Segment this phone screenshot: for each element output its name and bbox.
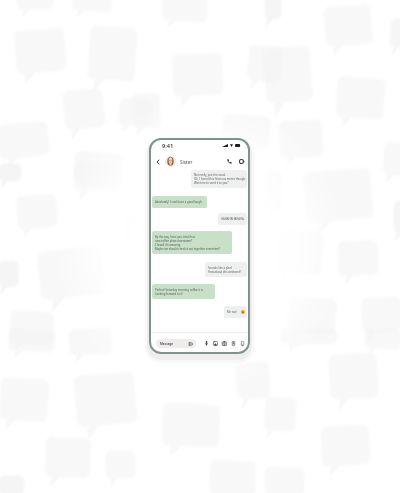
staticText: By the way, have you tried that new coff… (155, 235, 220, 251)
staticText: 9:41 (162, 142, 174, 150)
button[interactable]: Profile photo (165, 156, 176, 167)
button[interactable]: Me too! (224, 306, 247, 318)
button[interactable]: Video call (237, 157, 246, 166)
button[interactable]: Attach file (230, 340, 236, 347)
staticText: Me too! (227, 310, 237, 314)
button[interactable]: By the way, have you tried that new coff… (152, 231, 232, 254)
button[interactable]: Back (153, 157, 162, 166)
staticText: Absolutely! I could use a good laugh. (155, 200, 203, 204)
staticText: Message (160, 342, 174, 346)
button[interactable]: Not really, just the usual. Oh, I found … (191, 170, 247, 188)
staticText: Perfect! Saturday morning coffee it is. … (155, 288, 204, 296)
button[interactable]: Camera (221, 340, 227, 347)
button[interactable]: Perfect! Saturday morning coffee it is. … (152, 284, 215, 299)
button[interactable]: Absolutely! I could use a good laugh. (152, 196, 207, 208)
staticText: Sounds like a plan! How about this weeke… (208, 266, 242, 274)
button[interactable]: Sounds like a plan! How about this weeke… (205, 262, 247, 277)
button[interactable]: Voice message (203, 340, 209, 347)
button[interactable]: Call (225, 157, 234, 166)
staticText: Not really, just the usual. Oh, I found … (194, 173, 246, 185)
button[interactable]: Gallery (212, 340, 218, 347)
button[interactable]: Sticker (239, 340, 245, 347)
staticText: Sister (180, 159, 193, 165)
staticText: HAHAHAHAHAHA (221, 217, 244, 221)
button[interactable]: Message (156, 339, 196, 348)
button[interactable]: HAHAHAHAHAHA (218, 213, 247, 225)
